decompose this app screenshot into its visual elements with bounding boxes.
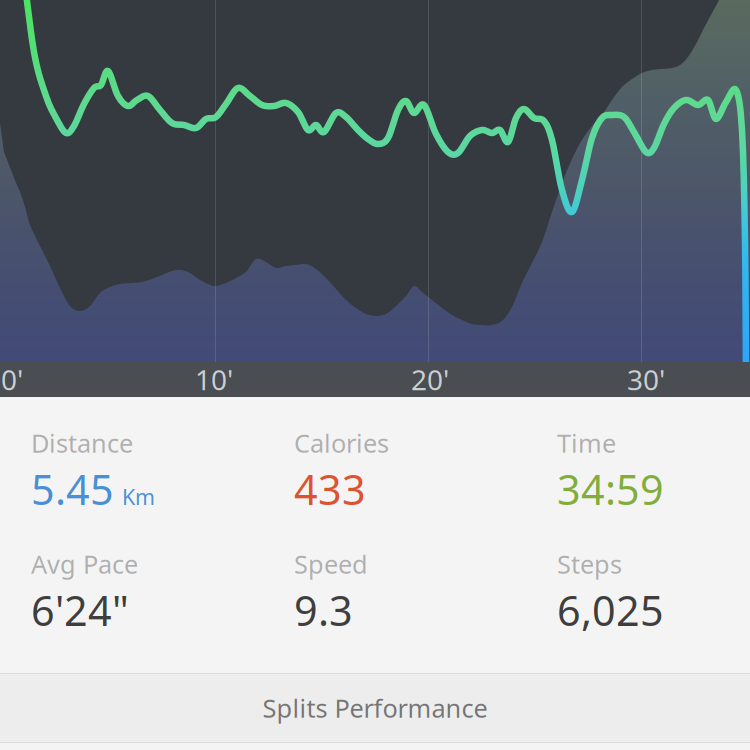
staticText: Steps [557, 547, 622, 581]
staticText: 9.3 [294, 583, 353, 637]
staticText: 6'24" [31, 583, 129, 637]
staticText: Km [122, 483, 155, 511]
staticText: Avg Pace [31, 547, 138, 581]
staticText: 34:59 [557, 462, 664, 516]
staticText: 6,025 [557, 583, 664, 637]
staticText: 5.45 [31, 462, 114, 516]
staticText: 0' [1, 361, 23, 398]
staticText: Time [557, 426, 616, 460]
button[interactable]: Splits Performance [0, 673, 750, 743]
staticText: Splits Performance [262, 691, 487, 725]
staticText: 20' [411, 361, 449, 398]
staticText: Calories [294, 426, 389, 460]
staticText: Speed [294, 547, 368, 581]
staticText: 30' [627, 361, 665, 398]
staticText: Distance [31, 426, 133, 460]
staticText: 10' [195, 361, 233, 398]
staticText: 433 [294, 462, 366, 516]
